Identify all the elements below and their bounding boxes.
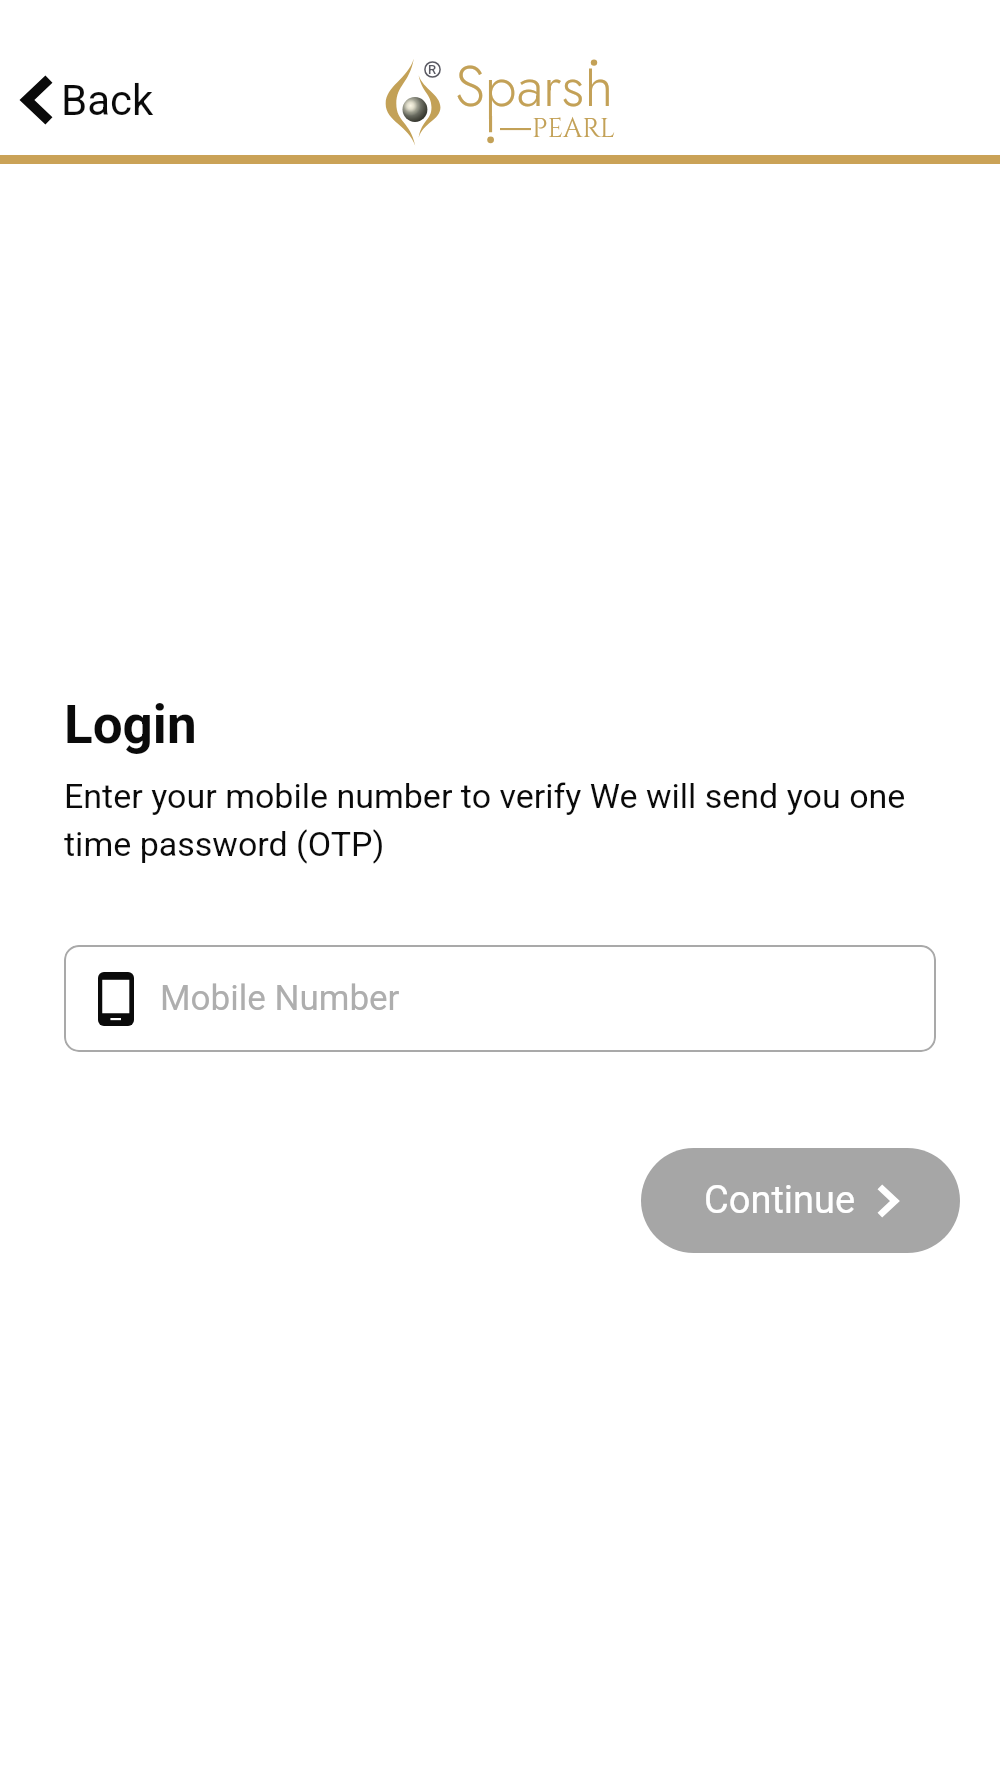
staticText: Back xyxy=(61,76,154,125)
button[interactable]: Continue xyxy=(641,1148,960,1253)
staticText: Enter your mobile number to verify We wi… xyxy=(64,776,940,864)
staticText: Login xyxy=(64,694,197,756)
staticText: Mobile Number xyxy=(160,978,400,1019)
staticText: R xyxy=(428,62,437,77)
button[interactable]: Mobile Number input field xyxy=(64,945,936,1052)
staticText: PEARL xyxy=(532,111,615,147)
staticText: Sparsh xyxy=(455,45,614,127)
other: Sparsh Pearl logo xyxy=(385,54,617,144)
button[interactable]: Back xyxy=(11,62,164,138)
staticText: Continue xyxy=(704,1178,856,1223)
